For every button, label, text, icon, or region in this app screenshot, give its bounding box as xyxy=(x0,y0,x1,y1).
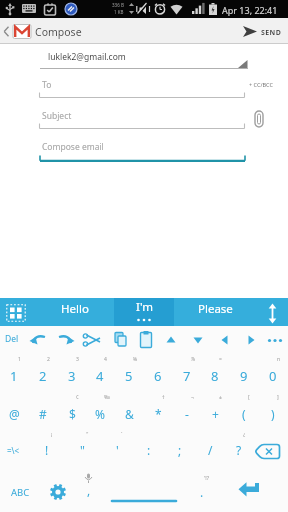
button[interactable]: , xyxy=(76,478,102,506)
button[interactable] xyxy=(144,363,172,399)
staticText: 4 xyxy=(96,367,104,385)
button[interactable] xyxy=(112,330,128,350)
button[interactable] xyxy=(238,20,288,42)
button[interactable] xyxy=(241,332,261,348)
staticText: % xyxy=(95,406,105,422)
staticText: 2 xyxy=(47,356,50,363)
button[interactable] xyxy=(0,437,29,473)
button[interactable] xyxy=(106,478,182,508)
button[interactable] xyxy=(31,437,63,473)
button[interactable] xyxy=(161,332,181,348)
button[interactable] xyxy=(230,363,258,399)
staticText: ¿ xyxy=(243,431,246,438)
button[interactable] xyxy=(0,400,28,436)
staticText: ' xyxy=(116,442,119,458)
button[interactable] xyxy=(236,478,266,506)
staticText: 1 xyxy=(10,367,18,385)
button[interactable] xyxy=(101,437,133,473)
button[interactable] xyxy=(251,437,283,473)
button[interactable] xyxy=(201,363,229,399)
button[interactable]: + CC/BCC xyxy=(246,78,280,92)
staticText: ± xyxy=(219,394,222,401)
staticText: ‰ xyxy=(104,394,110,401)
button[interactable] xyxy=(144,400,172,436)
button[interactable] xyxy=(259,363,287,399)
button[interactable] xyxy=(115,400,143,436)
button[interactable] xyxy=(39,138,245,163)
button[interactable] xyxy=(0,18,288,44)
staticText: '!? xyxy=(204,474,210,481)
staticText: Compose xyxy=(35,25,82,39)
button[interactable] xyxy=(114,298,174,326)
staticText: ( xyxy=(242,406,246,422)
button[interactable] xyxy=(173,363,201,399)
button[interactable] xyxy=(29,363,57,399)
button[interactable] xyxy=(115,363,143,399)
staticText: 336 B xyxy=(112,2,124,8)
button[interactable]: ABC xyxy=(4,478,40,506)
button[interactable] xyxy=(194,437,226,473)
button[interactable] xyxy=(40,48,248,69)
button[interactable] xyxy=(86,363,114,399)
button[interactable] xyxy=(58,400,86,436)
staticText: 6 xyxy=(154,367,162,385)
button[interactable] xyxy=(86,400,114,436)
button[interactable] xyxy=(230,400,258,436)
button[interactable] xyxy=(39,76,245,98)
staticText: luklek2@gmail.com xyxy=(48,51,126,63)
staticText: & xyxy=(125,406,134,422)
button[interactable] xyxy=(253,442,283,462)
staticText: † xyxy=(162,394,165,401)
staticText: ⅝ xyxy=(133,356,138,363)
staticText: 0 xyxy=(269,367,277,385)
staticText: - xyxy=(185,406,189,422)
staticText: Subject xyxy=(42,110,72,122)
button[interactable] xyxy=(6,304,26,322)
button[interactable] xyxy=(139,330,153,350)
button[interactable] xyxy=(133,437,165,473)
button[interactable] xyxy=(39,106,245,129)
staticText: ? xyxy=(236,442,242,458)
staticText: : xyxy=(147,442,151,458)
button[interactable] xyxy=(188,332,208,348)
staticText: =\< xyxy=(7,445,20,456)
button[interactable]: . xyxy=(188,478,214,506)
staticText: + xyxy=(212,406,219,422)
button[interactable] xyxy=(29,400,57,436)
staticText: = xyxy=(219,356,222,363)
button[interactable] xyxy=(173,400,201,436)
staticText: I'm xyxy=(136,299,153,315)
button[interactable] xyxy=(263,303,282,324)
button[interactable] xyxy=(250,108,270,130)
staticText: 1 xyxy=(18,356,21,363)
button[interactable] xyxy=(83,331,102,349)
staticText: ″ xyxy=(86,431,89,438)
staticText: . xyxy=(200,484,204,500)
button[interactable] xyxy=(223,437,255,473)
button[interactable] xyxy=(55,330,76,350)
button[interactable] xyxy=(201,400,229,436)
staticText: Hello xyxy=(61,301,89,317)
staticText: 3 xyxy=(68,367,76,385)
staticText: Apr 13, 22:41 xyxy=(222,4,278,16)
button[interactable] xyxy=(266,334,286,347)
button[interactable] xyxy=(0,363,28,399)
button[interactable] xyxy=(46,480,70,504)
button[interactable] xyxy=(58,363,86,399)
button[interactable] xyxy=(164,437,196,473)
staticText: [ xyxy=(248,394,250,401)
button[interactable] xyxy=(215,332,235,348)
button[interactable] xyxy=(259,400,287,436)
staticText: n xyxy=(277,356,281,363)
staticText: 3 xyxy=(76,356,79,363)
staticText: 2 xyxy=(39,367,47,385)
staticText: Del xyxy=(5,333,19,345)
button[interactable] xyxy=(28,330,49,350)
staticText: ¢ xyxy=(76,394,79,401)
staticText: 5 xyxy=(125,367,133,385)
button[interactable]: Del xyxy=(3,332,23,348)
staticText: * xyxy=(155,406,162,422)
staticText: " xyxy=(80,442,85,458)
button[interactable] xyxy=(66,437,98,473)
staticText: 8 xyxy=(211,367,219,385)
